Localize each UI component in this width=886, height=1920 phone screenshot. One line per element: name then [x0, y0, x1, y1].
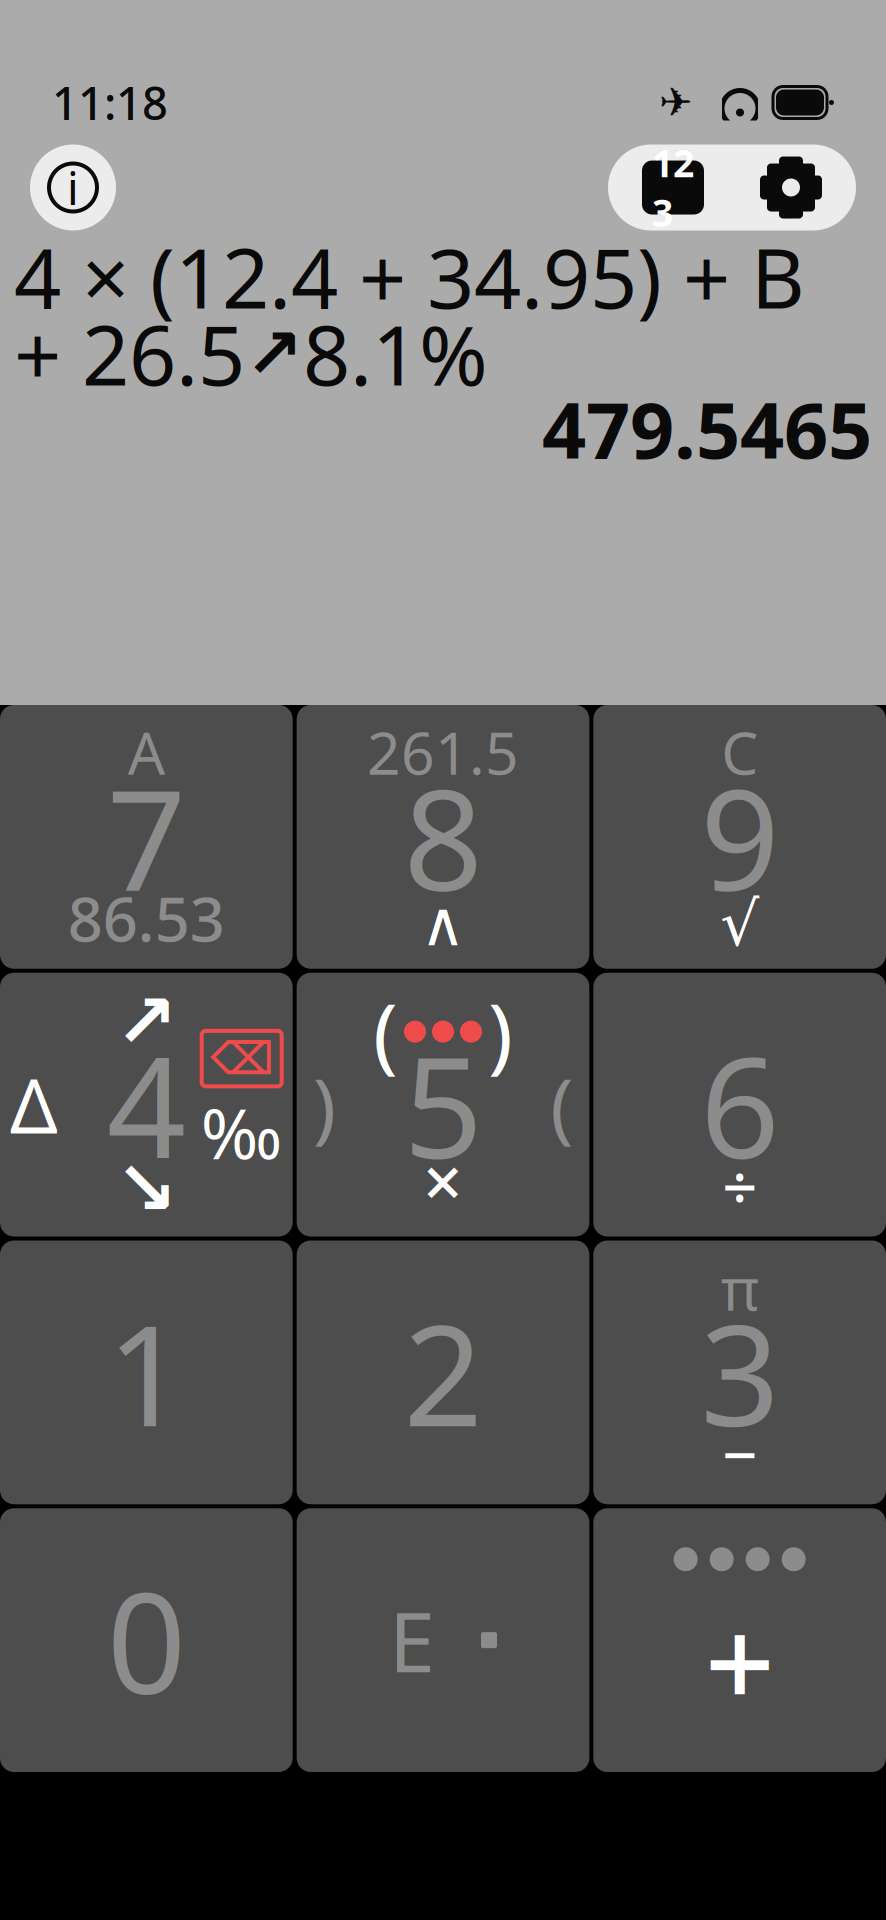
button[interactable]: Six [593, 973, 886, 1237]
staticText: × [423, 1134, 463, 1226]
staticText: ↗ [115, 979, 178, 1063]
staticText: ✈ [659, 80, 693, 125]
staticText: ) [488, 977, 513, 1087]
button[interactable]: Two [297, 1240, 589, 1504]
staticText: 8 [403, 745, 482, 929]
staticText: 5 [403, 1013, 482, 1197]
staticText: 8.1% [303, 299, 488, 408]
button[interactable]: Settings [760, 156, 822, 218]
staticText: ↗ [245, 314, 303, 393]
button[interactable]: Nine [593, 705, 886, 969]
button[interactable]: Five [297, 973, 589, 1237]
staticText: 0 [107, 1548, 186, 1732]
staticText: 6 [700, 1013, 779, 1197]
staticText: 2 [403, 1280, 482, 1464]
staticText: + 26.5 [14, 299, 245, 408]
staticText: 86.53 [68, 877, 225, 959]
staticText: 11:18 [52, 72, 168, 133]
button[interactable]: Info [30, 144, 116, 230]
staticText: 261.5 [367, 713, 519, 791]
staticText: ⌫ [210, 1033, 274, 1084]
staticText: 3 [700, 1280, 779, 1464]
staticText: 123 [652, 138, 694, 237]
staticText: − [722, 1413, 757, 1494]
staticText: 4 × (12.4 + 34.95) + B [14, 222, 805, 331]
button[interactable]: Decimal point [297, 1508, 589, 1772]
staticText: ‰ [201, 1086, 283, 1178]
staticText: ) [313, 1053, 336, 1156]
staticText: 7 [107, 745, 186, 929]
staticText: π [721, 1248, 759, 1326]
staticText: 4 [107, 1013, 186, 1197]
button[interactable]: Eight [297, 705, 589, 969]
staticText: √ [720, 889, 759, 959]
button[interactable]: Number pad [642, 160, 704, 214]
staticText: + [705, 1579, 775, 1742]
staticText: ( [373, 977, 398, 1087]
staticText: ÷ [722, 1145, 757, 1226]
staticText: Δ [10, 1055, 58, 1154]
button[interactable]: One [0, 1240, 293, 1504]
button[interactable]: Seven [0, 705, 293, 969]
staticText: i [67, 157, 79, 218]
staticText: A [128, 713, 165, 791]
staticText: ( [550, 1053, 573, 1156]
staticText: ∧ [420, 889, 465, 959]
button[interactable]: Four [0, 973, 293, 1237]
staticText: C [721, 713, 758, 791]
staticText: E [389, 1585, 435, 1695]
button[interactable]: Plus [593, 1508, 886, 1772]
button[interactable]: Three [593, 1240, 886, 1504]
staticText: 1 [107, 1280, 186, 1464]
staticText: ↘ [115, 1146, 178, 1230]
button[interactable]: Zero [0, 1508, 293, 1772]
staticText: 9 [700, 745, 779, 929]
staticText: 479.5465 [542, 377, 872, 480]
